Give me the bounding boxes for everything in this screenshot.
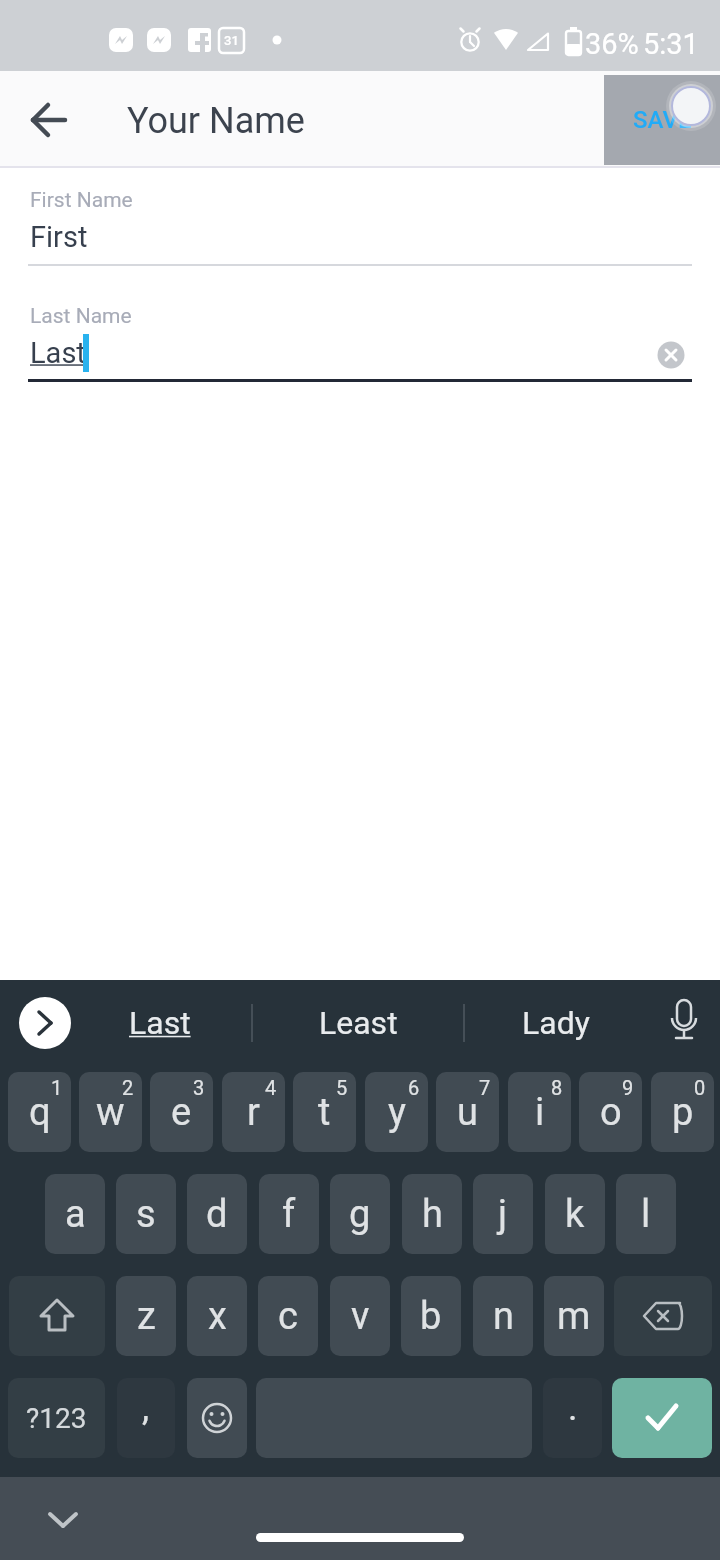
button[interactable] bbox=[187, 1276, 247, 1356]
staticText: e bbox=[171, 1090, 192, 1135]
staticText: Last bbox=[129, 1004, 191, 1042]
button[interactable] bbox=[116, 1174, 176, 1254]
staticText: m bbox=[557, 1294, 591, 1339]
button[interactable] bbox=[9, 1276, 105, 1356]
staticText: 3 bbox=[193, 1076, 205, 1099]
staticText: Lady bbox=[522, 1004, 590, 1042]
button[interactable] bbox=[436, 1072, 499, 1152]
button[interactable] bbox=[258, 1276, 318, 1356]
staticText: t bbox=[318, 1090, 331, 1135]
button[interactable] bbox=[365, 1072, 428, 1152]
staticText: u bbox=[457, 1090, 478, 1135]
button[interactable] bbox=[612, 1378, 712, 1458]
staticText: 2 bbox=[122, 1076, 134, 1099]
button[interactable] bbox=[19, 90, 79, 150]
staticText: p bbox=[672, 1090, 694, 1135]
staticText: 6 bbox=[408, 1076, 420, 1099]
button[interactable] bbox=[8, 1378, 105, 1458]
staticText: i bbox=[535, 1090, 545, 1135]
button[interactable] bbox=[473, 1174, 533, 1254]
button[interactable] bbox=[330, 1174, 390, 1254]
staticText: 31 bbox=[224, 33, 239, 48]
button[interactable] bbox=[117, 1378, 175, 1458]
staticText: Last bbox=[30, 336, 86, 370]
staticText: 1 bbox=[51, 1076, 63, 1099]
staticText: First Name bbox=[30, 188, 133, 213]
staticText: 36% bbox=[585, 27, 639, 61]
button[interactable] bbox=[330, 1276, 390, 1356]
staticText: b bbox=[420, 1294, 442, 1339]
staticText: x bbox=[208, 1294, 227, 1339]
button[interactable] bbox=[543, 1378, 602, 1458]
staticText: Last Name bbox=[30, 304, 132, 329]
staticText: k bbox=[565, 1192, 585, 1237]
staticText: j bbox=[498, 1192, 508, 1237]
button[interactable]: SAVE bbox=[604, 75, 720, 165]
staticText: f bbox=[282, 1192, 296, 1237]
staticText: 5:31 bbox=[643, 27, 699, 61]
staticText: First bbox=[30, 220, 88, 254]
button[interactable] bbox=[259, 1174, 319, 1254]
staticText: h bbox=[422, 1192, 443, 1237]
button[interactable] bbox=[544, 1276, 604, 1356]
staticText: o bbox=[600, 1090, 622, 1135]
staticText: 9 bbox=[622, 1076, 634, 1099]
button[interactable] bbox=[187, 1378, 247, 1458]
staticText: a bbox=[65, 1192, 86, 1237]
staticText: Your Name bbox=[127, 100, 305, 142]
button[interactable] bbox=[19, 997, 71, 1049]
staticText: l bbox=[641, 1192, 651, 1237]
staticText: . bbox=[568, 1387, 578, 1429]
button[interactable] bbox=[256, 1533, 464, 1542]
button[interactable] bbox=[187, 1174, 247, 1254]
button[interactable] bbox=[651, 1072, 714, 1152]
button[interactable] bbox=[222, 1072, 285, 1152]
staticText: , bbox=[142, 1387, 150, 1429]
staticText: y bbox=[388, 1090, 406, 1135]
staticText: v bbox=[351, 1294, 370, 1339]
button[interactable] bbox=[658, 996, 710, 1050]
staticText: 0 bbox=[694, 1076, 706, 1099]
button[interactable] bbox=[508, 1072, 571, 1152]
staticText: 7 bbox=[479, 1076, 491, 1099]
button[interactable] bbox=[116, 1276, 176, 1356]
button[interactable]: Last bbox=[88, 988, 232, 1058]
button[interactable] bbox=[8, 1072, 71, 1152]
button[interactable] bbox=[616, 1174, 676, 1254]
staticText: w bbox=[96, 1090, 125, 1135]
staticText: s bbox=[136, 1192, 156, 1237]
button[interactable] bbox=[79, 1072, 142, 1152]
staticText: SAVE bbox=[633, 106, 692, 134]
staticText: 5 bbox=[336, 1076, 348, 1099]
button[interactable] bbox=[293, 1072, 356, 1152]
staticText: ?123 bbox=[26, 1402, 87, 1435]
button[interactable]: Least bbox=[260, 988, 456, 1058]
button[interactable] bbox=[473, 1276, 533, 1356]
button[interactable] bbox=[45, 1174, 105, 1254]
staticText: 4 bbox=[265, 1076, 277, 1099]
button[interactable] bbox=[402, 1174, 462, 1254]
staticText: r bbox=[247, 1090, 260, 1135]
staticText: d bbox=[206, 1192, 228, 1237]
button[interactable] bbox=[28, 293, 692, 393]
staticText: 8 bbox=[551, 1076, 563, 1099]
button[interactable] bbox=[150, 1072, 213, 1152]
button[interactable] bbox=[28, 178, 692, 278]
button[interactable] bbox=[401, 1276, 461, 1356]
button[interactable] bbox=[545, 1174, 605, 1254]
button[interactable]: Lady bbox=[470, 988, 642, 1058]
staticText: c bbox=[278, 1294, 298, 1339]
button[interactable] bbox=[33, 1487, 93, 1547]
staticText: Least bbox=[319, 1004, 398, 1042]
staticText: q bbox=[29, 1090, 51, 1135]
staticText: z bbox=[137, 1294, 156, 1339]
button[interactable] bbox=[614, 1276, 712, 1356]
staticText: g bbox=[349, 1192, 371, 1237]
staticText: n bbox=[493, 1294, 514, 1339]
button[interactable] bbox=[579, 1072, 642, 1152]
